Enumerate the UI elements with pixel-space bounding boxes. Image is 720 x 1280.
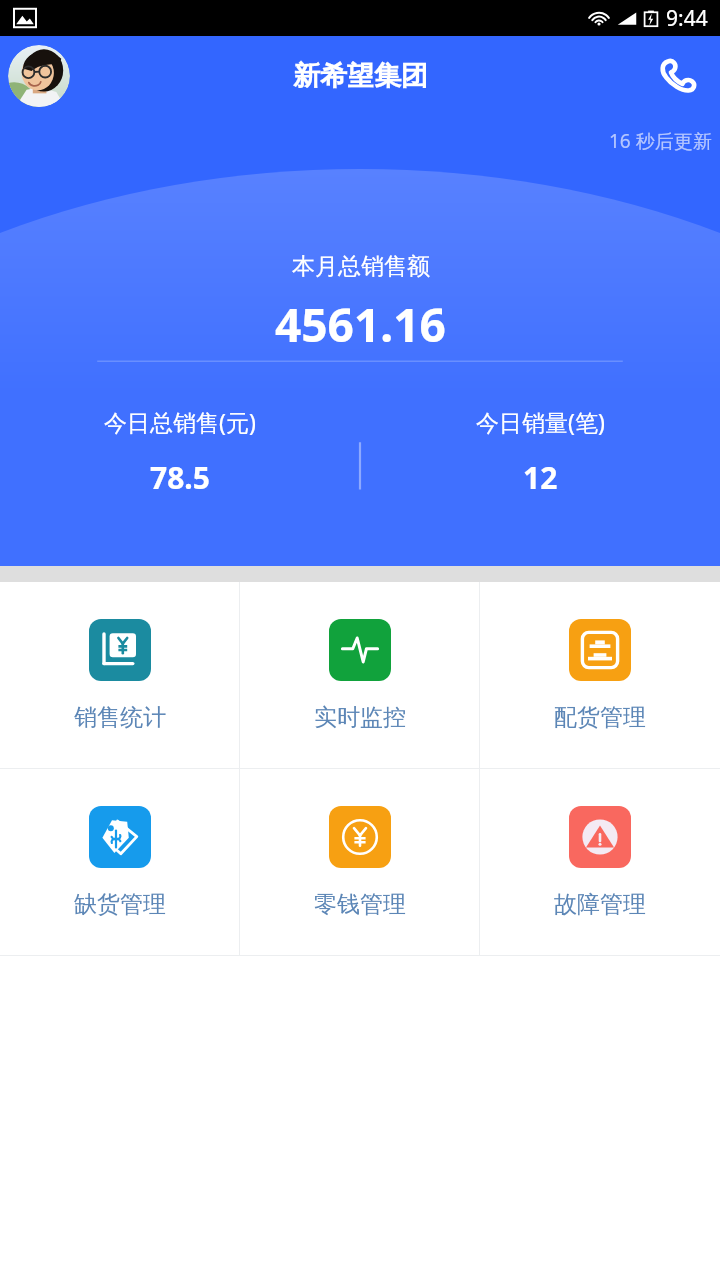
staticText: 实时监控	[314, 703, 406, 732]
button[interactable]: Call	[650, 48, 706, 104]
button[interactable]: 配货管理	[480, 582, 720, 768]
button[interactable]: Profile	[8, 45, 70, 107]
button[interactable]: 销售统计	[0, 582, 240, 768]
staticText: 今日总销售(元)	[104, 406, 256, 437]
staticText: 销售统计	[74, 703, 166, 732]
staticText: 配货管理	[554, 703, 646, 732]
button[interactable]: 故障管理	[480, 769, 720, 955]
button[interactable]: 零钱管理	[240, 769, 480, 955]
staticText: 16 秒后更新	[609, 128, 712, 154]
staticText: 今日销量(笔)	[476, 406, 605, 437]
staticText: 新希望集团	[293, 59, 428, 93]
staticText: 12	[523, 457, 558, 498]
staticText: 9:44	[666, 4, 708, 33]
button[interactable]: 实时监控	[240, 582, 480, 768]
button[interactable]: 缺货管理	[0, 769, 240, 955]
staticText: 本月总销售额	[292, 252, 430, 281]
staticText: 4561.16	[275, 293, 446, 356]
staticText: 故障管理	[554, 890, 646, 919]
staticText: 缺货管理	[74, 890, 166, 919]
staticText: 零钱管理	[314, 890, 406, 919]
staticText: 78.5	[150, 457, 210, 498]
